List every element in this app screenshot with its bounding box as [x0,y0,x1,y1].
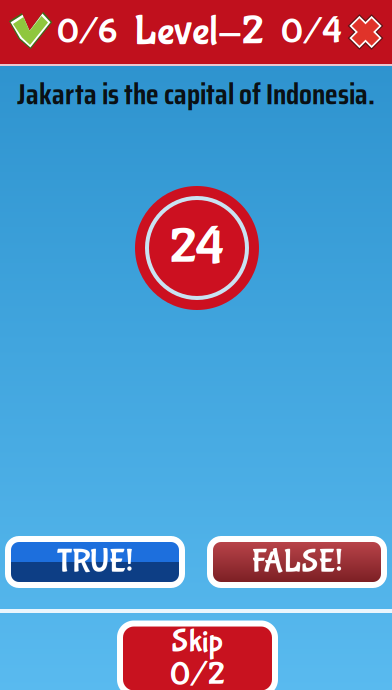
button[interactable]: Correct answers, 0 of 6 [0,12,117,52]
staticText: 24 [170,218,224,277]
button[interactable]: FALSE! [207,536,387,588]
staticText: 0/4 [281,12,342,52]
staticText: FALSE! [251,543,342,581]
staticText: 0/2 [170,656,225,690]
staticText: Skip [171,623,223,660]
staticText: TRUE! [57,543,133,581]
button[interactable]: Skip [117,620,278,690]
button[interactable]: Wrong answers, 0 of 4 [281,12,392,52]
button[interactable]: TRUE! [5,536,185,588]
staticText: Jakarta is the capital of Indonesia. [17,71,375,117]
staticText: 0/6 [57,12,117,52]
staticText: Level-2 [134,8,264,56]
